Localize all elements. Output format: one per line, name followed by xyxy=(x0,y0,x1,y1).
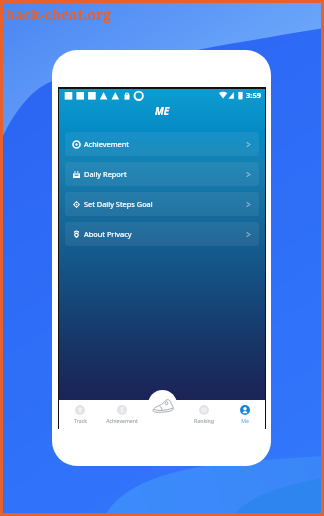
staticText: Achievement xyxy=(84,139,130,149)
button[interactable]: Track xyxy=(59,400,101,429)
button[interactable]: About Privacy xyxy=(65,222,259,246)
staticText: Ranking xyxy=(194,417,214,424)
button[interactable]: Achievement xyxy=(101,400,142,429)
button[interactable]: Achievement xyxy=(65,132,259,156)
staticText: Me xyxy=(241,417,249,424)
button[interactable]: Start walking xyxy=(148,390,177,419)
staticText: Track xyxy=(74,417,87,424)
button[interactable]: Ranking xyxy=(183,400,224,429)
button[interactable]: Daily Report xyxy=(65,162,259,186)
staticText: Set Daily Steps Goal xyxy=(84,199,153,209)
staticText: Achievement xyxy=(106,417,138,424)
staticText: ME xyxy=(155,104,170,118)
staticText: About Privacy xyxy=(84,229,132,239)
staticText: hack-cheat.org xyxy=(6,5,112,24)
button[interactable]: Me xyxy=(224,400,265,429)
staticText: Daily Report xyxy=(84,169,127,179)
staticText: 3:59 xyxy=(246,90,261,100)
button[interactable]: Set Daily Steps Goal xyxy=(65,192,259,216)
